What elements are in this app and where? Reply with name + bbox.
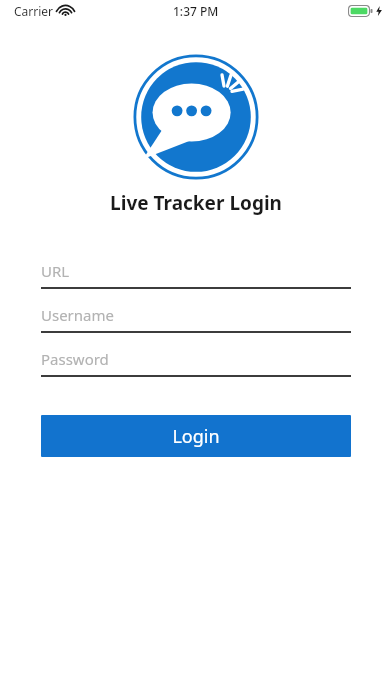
button[interactable]: Username <box>41 298 351 333</box>
staticText: URL <box>41 261 70 281</box>
staticText: Password <box>41 349 109 369</box>
button[interactable]: Password <box>41 342 351 377</box>
staticText: Live Tracker Login <box>110 190 282 216</box>
staticText: 1:37 PM <box>173 3 219 19</box>
staticText: Carrier <box>14 3 54 19</box>
button[interactable]: Login <box>41 415 351 457</box>
button[interactable]: URL <box>41 254 351 289</box>
staticText: Login <box>172 424 220 449</box>
staticText: Username <box>41 305 114 325</box>
